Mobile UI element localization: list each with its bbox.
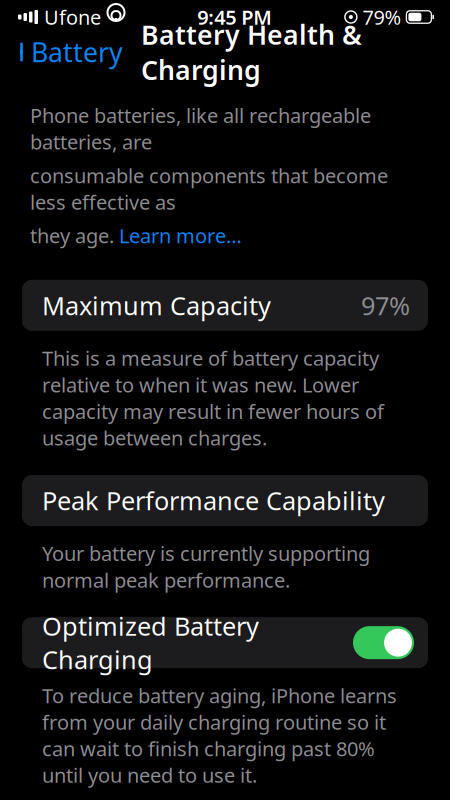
staticText: Optimized Battery Charging [42,609,259,676]
staticText: they age. [30,222,119,249]
button[interactable]: Learn more… [119,222,242,249]
staticText: Your battery is currently supporting nor… [42,540,370,593]
button[interactable]: Optimized Battery Charging toggle, on [353,626,414,659]
staticText: consumable components that become less e… [30,162,388,215]
button[interactable]: Battery [0,28,131,76]
staticText: To reduce battery aging, iPhone learns f… [42,682,397,788]
staticText: Battery [31,34,123,70]
button[interactable]: Maximum Capacity [22,280,428,331]
staticText: 79% [362,4,401,30]
staticText: Battery Health & Charging [141,17,362,87]
staticText: 97% [361,288,410,322]
staticText: Maximum Capacity [42,288,271,322]
staticText: This is a measure of battery capacity re… [42,345,384,451]
staticText: 9:45 PM [197,4,272,30]
staticText: Phone batteries, like all rechargeable b… [30,102,371,155]
button[interactable]: Optimized Battery Charging [22,617,428,668]
staticText: Peak Performance Capability [42,484,385,517]
staticText: Ufone [44,4,101,30]
button[interactable]: Peak Performance Capability [22,475,428,526]
staticText: Learn more… [119,222,242,249]
